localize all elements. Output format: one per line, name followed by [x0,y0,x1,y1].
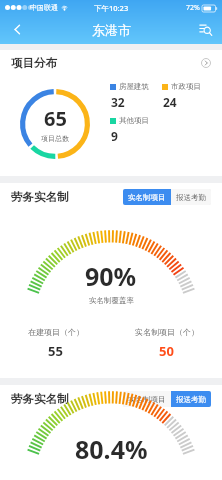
button[interactable]: 报送考勤 [171,391,211,407]
staticText: 50 [159,342,174,360]
staticText: 90% [85,259,137,293]
staticText: 65 [44,105,67,132]
button[interactable]: 实名制项目 [123,391,171,407]
staticText: 东港市 [92,22,131,38]
staticText: 市政项目 [171,82,201,91]
staticText: 项目总数 [41,134,69,143]
button[interactable]: Search [188,15,222,44]
staticText: 在建项目（个） [28,327,84,337]
button[interactable]: 项目分布 [0,50,222,76]
staticText: 实名制覆盖率 [89,296,134,305]
staticText: 报送考勤 [176,193,206,202]
staticText: 中国联通 [30,3,58,12]
staticText: 72% [186,3,200,13]
button[interactable]: 实名制项目 [123,189,171,205]
staticText: 其他项目 [119,116,149,125]
staticText: 9 [111,128,118,144]
staticText: 劳务实名制 [11,392,69,406]
staticText: 实名制项目 [128,395,166,404]
staticText: 房屋建筑 [119,82,149,91]
staticText: 报送考勤 [176,395,206,404]
staticText: 80.4% [75,432,148,466]
staticText: 实名制项目 [128,193,166,202]
staticText: 下午10:23 [94,3,129,13]
staticText: 项目分布 [11,56,57,70]
staticText: 32 [111,94,125,110]
staticText: 55 [48,342,63,360]
button[interactable]: Back [0,15,34,44]
staticText: 劳务实名制 [11,190,69,204]
button[interactable]: 报送考勤 [171,189,211,205]
staticText: 实名制项目（个） [135,327,199,337]
staticText: 24 [163,94,177,110]
